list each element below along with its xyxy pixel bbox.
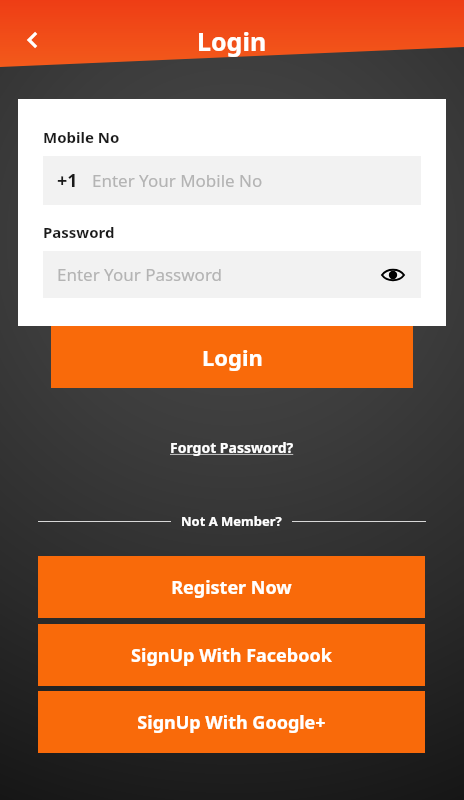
staticText: Login xyxy=(202,342,263,372)
staticText: Mobile No xyxy=(43,127,120,147)
button[interactable]: Login xyxy=(51,326,413,388)
button[interactable]: Register Now xyxy=(38,556,425,618)
staticText: Login xyxy=(197,24,267,58)
button[interactable]: SignUp With Google+ xyxy=(38,691,425,753)
button[interactable]: Show password xyxy=(379,261,407,289)
staticText: Password xyxy=(43,222,115,242)
staticText: Not A Member? xyxy=(181,512,282,530)
button[interactable]: +1 xyxy=(43,156,421,205)
staticText: Forgot Password? xyxy=(170,438,294,457)
staticText: Enter Your Password xyxy=(57,263,379,286)
staticText: Enter Your Mobile No xyxy=(92,169,263,192)
button[interactable]: Forgot Password? xyxy=(164,432,300,463)
button[interactable]: SignUp With Facebook xyxy=(38,624,425,686)
staticText: SignUp With Facebook xyxy=(131,643,332,668)
button[interactable]: Back xyxy=(14,21,52,59)
staticText: +1 xyxy=(57,168,78,193)
staticText: SignUp With Google+ xyxy=(137,710,326,735)
staticText: Register Now xyxy=(171,575,292,600)
button[interactable]: Enter Your Password xyxy=(43,251,421,298)
